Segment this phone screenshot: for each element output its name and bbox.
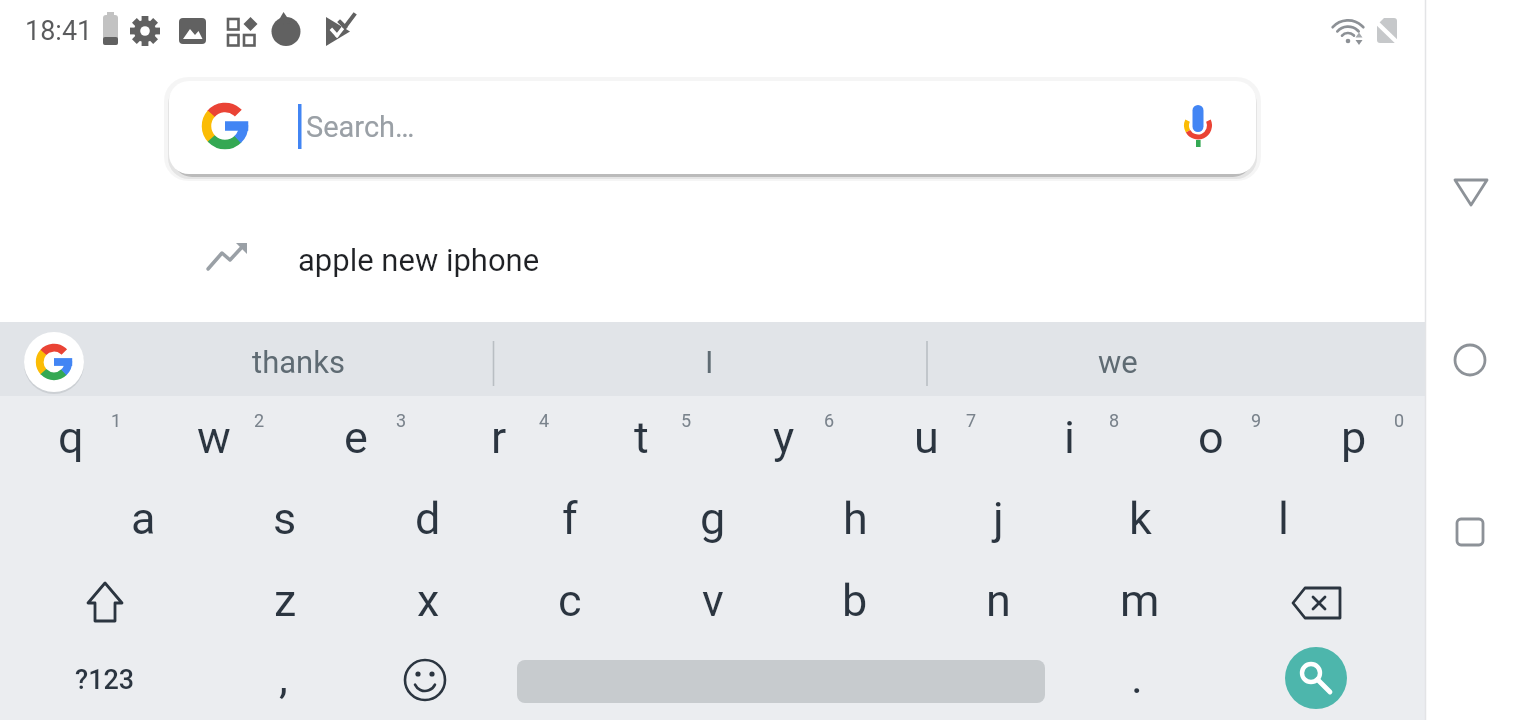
staticText: z bbox=[274, 574, 297, 627]
button[interactable]: v bbox=[643, 560, 783, 640]
staticText: q bbox=[58, 411, 84, 464]
staticText: , bbox=[279, 651, 288, 704]
button[interactable]: z bbox=[215, 560, 355, 640]
staticText: 1 bbox=[111, 410, 122, 431]
staticText: h bbox=[843, 492, 868, 545]
button[interactable] bbox=[169, 81, 1256, 174]
staticText: 5 bbox=[681, 410, 692, 431]
staticText: 6 bbox=[824, 410, 835, 431]
button[interactable]: s bbox=[215, 478, 355, 558]
button[interactable]: . bbox=[1067, 637, 1207, 717]
staticText: 8 bbox=[1109, 410, 1120, 431]
staticText: n bbox=[986, 574, 1011, 627]
button[interactable]: i bbox=[999, 397, 1139, 477]
staticText: d bbox=[415, 492, 441, 545]
staticText: k bbox=[1129, 492, 1152, 545]
button[interactable]: I bbox=[494, 325, 924, 399]
button[interactable]: w bbox=[144, 397, 284, 477]
staticText: t bbox=[634, 411, 649, 464]
staticText: p bbox=[1341, 411, 1367, 464]
button[interactable]: o bbox=[1141, 397, 1281, 477]
button[interactable]: , bbox=[213, 637, 353, 717]
staticText: u bbox=[914, 411, 939, 464]
button[interactable] bbox=[1430, 150, 1515, 235]
staticText: 9 bbox=[1251, 410, 1262, 431]
button[interactable]: h bbox=[785, 478, 925, 558]
staticText: f bbox=[562, 492, 578, 545]
button[interactable]: y bbox=[714, 397, 854, 477]
button[interactable] bbox=[1246, 560, 1386, 640]
staticText: thanks bbox=[252, 344, 345, 380]
button[interactable]: n bbox=[928, 560, 1068, 640]
button[interactable]: p bbox=[1284, 397, 1424, 477]
staticText: 3 bbox=[396, 410, 407, 431]
staticText: g bbox=[700, 492, 726, 545]
staticText: c bbox=[558, 574, 582, 627]
staticText: o bbox=[1198, 411, 1224, 464]
staticText: 2 bbox=[254, 410, 265, 431]
button[interactable]: c bbox=[500, 560, 640, 640]
button[interactable]: b bbox=[785, 560, 925, 640]
button[interactable] bbox=[385, 640, 465, 720]
button[interactable]: l bbox=[1213, 478, 1353, 558]
staticText: x bbox=[417, 574, 440, 627]
button[interactable]: t bbox=[571, 397, 711, 477]
staticText: Search… bbox=[306, 110, 415, 144]
button[interactable]: g bbox=[643, 478, 783, 558]
button[interactable]: u bbox=[856, 397, 996, 477]
staticText: j bbox=[993, 492, 1004, 545]
staticText: l bbox=[1278, 492, 1289, 545]
staticText: 0 bbox=[1394, 410, 1405, 431]
button[interactable] bbox=[0, 218, 1425, 298]
button[interactable]: e bbox=[286, 397, 426, 477]
staticText: r bbox=[491, 411, 507, 464]
staticText: 7 bbox=[966, 410, 977, 431]
staticText: v bbox=[702, 574, 724, 627]
button[interactable]: k bbox=[1070, 478, 1210, 558]
staticText: 4 bbox=[539, 410, 550, 431]
staticText: we bbox=[1098, 344, 1138, 380]
button[interactable] bbox=[1430, 490, 1515, 575]
button[interactable]: thanks bbox=[103, 325, 493, 399]
staticText: . bbox=[1131, 651, 1143, 704]
button[interactable]: a bbox=[73, 478, 213, 558]
button[interactable]: f bbox=[500, 478, 640, 558]
staticText: 18:41 bbox=[25, 15, 93, 47]
staticText: ?123 bbox=[75, 664, 135, 696]
staticText: w bbox=[197, 411, 231, 464]
button[interactable] bbox=[24, 332, 84, 392]
button[interactable]: x bbox=[358, 560, 498, 640]
button[interactable] bbox=[35, 560, 175, 640]
staticText: s bbox=[273, 492, 297, 545]
button[interactable]: r bbox=[429, 397, 569, 477]
staticText: m bbox=[1120, 574, 1160, 627]
staticText: b bbox=[842, 574, 868, 627]
staticText: apple new iphone bbox=[298, 242, 540, 278]
button[interactable]: d bbox=[358, 478, 498, 558]
staticText: y bbox=[773, 411, 795, 464]
button[interactable]: we bbox=[923, 325, 1313, 399]
staticText: i bbox=[1064, 411, 1075, 464]
button[interactable] bbox=[1430, 318, 1515, 403]
button[interactable]: m bbox=[1070, 560, 1210, 640]
button[interactable]: j bbox=[928, 478, 1068, 558]
staticText: e bbox=[344, 411, 368, 464]
button[interactable] bbox=[1285, 647, 1347, 709]
staticText: a bbox=[131, 492, 156, 545]
staticText: I bbox=[705, 344, 714, 380]
button[interactable]: q bbox=[1, 397, 141, 477]
button[interactable]: ?123 bbox=[35, 640, 175, 720]
